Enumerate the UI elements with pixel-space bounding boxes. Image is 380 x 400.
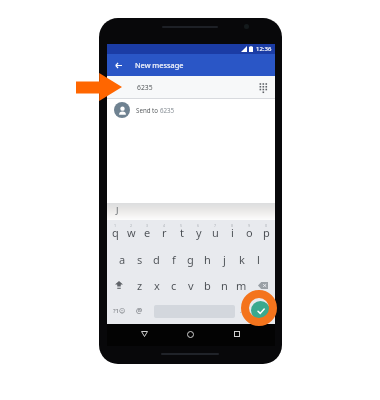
staticText: d: [153, 252, 160, 267]
staticText: i: [231, 225, 234, 240]
button[interactable]: 7: [207, 220, 224, 246]
staticText: 1: [114, 223, 117, 228]
staticText: J: [116, 204, 119, 216]
button[interactable]: n: [216, 272, 233, 298]
staticText: 9: [248, 223, 251, 228]
button[interactable]: 5: [173, 220, 190, 246]
staticText: 8: [231, 223, 234, 228]
staticText: u: [212, 225, 219, 240]
button[interactable]: 6235: [107, 76, 275, 98]
staticText: l: [257, 252, 260, 267]
button[interactable]: b: [199, 272, 216, 298]
button[interactable]: Shift: [107, 272, 131, 298]
staticText: r: [162, 225, 167, 240]
button[interactable]: Back: [135, 325, 153, 343]
button[interactable]: 9: [241, 220, 258, 246]
staticText: o: [246, 225, 253, 240]
button[interactable]: 4: [156, 220, 173, 246]
button[interactable]: .: [235, 298, 247, 324]
button[interactable]: 0: [258, 220, 275, 246]
staticText: w: [127, 225, 136, 240]
staticText: b: [204, 278, 211, 293]
staticText: 7: [214, 223, 217, 228]
button[interactable]: Send to: [107, 99, 275, 121]
staticText: j: [223, 252, 226, 267]
staticText: x: [154, 278, 160, 293]
staticText: 6235: [160, 106, 175, 114]
button[interactable]: a: [114, 246, 131, 272]
staticText: t: [180, 225, 184, 240]
staticText: 2: [130, 223, 133, 228]
button[interactable]: Dialpad: [255, 79, 271, 95]
staticText: a: [119, 252, 126, 267]
button[interactable]: z: [131, 272, 148, 298]
staticText: 0: [265, 223, 268, 228]
staticText: 6235: [137, 83, 153, 92]
button[interactable]: Backspace: [250, 272, 275, 298]
staticText: e: [144, 225, 151, 240]
button[interactable]: Send: [251, 301, 270, 320]
button[interactable]: v: [182, 272, 199, 298]
staticText: q: [112, 225, 119, 240]
staticText: v: [188, 278, 194, 293]
button[interactable]: Home: [181, 325, 199, 343]
staticText: z: [137, 278, 143, 293]
button[interactable]: j: [216, 246, 233, 272]
button[interactable]: k: [233, 246, 250, 272]
button[interactable]: 8: [224, 220, 241, 246]
staticText: c: [171, 278, 177, 293]
staticText: y: [196, 225, 202, 240]
button[interactable]: l: [250, 246, 267, 272]
staticText: 12:36: [256, 45, 272, 53]
staticText: h: [204, 252, 211, 267]
staticText: 6: [197, 223, 200, 228]
staticText: New message: [135, 60, 184, 70]
button[interactable]: g: [182, 246, 199, 272]
staticText: 5: [180, 223, 183, 228]
staticText: p: [263, 225, 270, 240]
button[interactable]: c: [165, 272, 182, 298]
button[interactable]: @: [131, 298, 147, 324]
button[interactable]: ?1☺: [110, 298, 128, 324]
button[interactable]: s: [131, 246, 148, 272]
staticText: 3: [146, 223, 149, 228]
staticText: ?1☺: [113, 307, 126, 315]
staticText: k: [239, 252, 245, 267]
button[interactable]: 3: [139, 220, 156, 246]
staticText: n: [221, 278, 228, 293]
button[interactable]: Back: [107, 54, 130, 76]
button[interactable]: 6: [190, 220, 207, 246]
button[interactable]: 1: [107, 220, 123, 246]
button[interactable]: f: [165, 246, 182, 272]
staticText: @: [136, 306, 143, 316]
staticText: 4: [163, 223, 166, 228]
staticText: Send to: [136, 106, 160, 114]
staticText: f: [172, 252, 176, 267]
button[interactable]: Recents: [228, 325, 246, 343]
staticText: g: [187, 252, 194, 267]
button[interactable]: x: [148, 272, 165, 298]
button[interactable]: 2: [123, 220, 139, 246]
staticText: s: [137, 252, 143, 267]
staticText: m: [236, 278, 247, 293]
button[interactable]: h: [199, 246, 216, 272]
button[interactable]: m: [233, 272, 250, 298]
button[interactable]: d: [148, 246, 165, 272]
staticText: .: [240, 307, 242, 315]
